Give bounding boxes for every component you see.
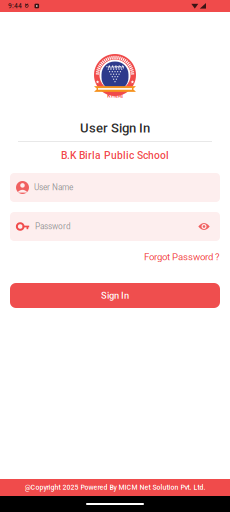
button[interactable]: Forgot Password ?	[144, 252, 220, 262]
button[interactable]: Password	[10, 212, 220, 241]
staticText: Forgot Password ?	[144, 251, 220, 263]
staticText: Password	[35, 222, 71, 231]
staticText: Sign In	[101, 290, 129, 301]
staticText: @Copyright 2025 Powered By MICM Net Solu…	[24, 483, 205, 491]
staticText: KHERI	[107, 92, 123, 99]
staticText: User Name	[34, 183, 73, 192]
staticText: B.K Birla Public School	[61, 149, 169, 161]
button[interactable]: Sign In	[10, 283, 220, 308]
staticText: 9:44	[8, 2, 22, 10]
button[interactable]: User Name	[10, 173, 220, 202]
staticText: User Sign In	[80, 120, 150, 136]
